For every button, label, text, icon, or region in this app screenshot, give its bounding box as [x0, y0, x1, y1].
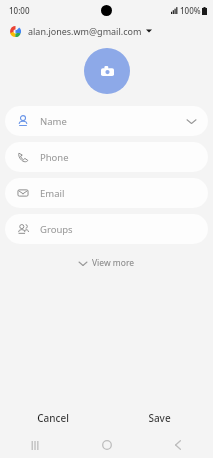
button[interactable]: View more: [71, 254, 143, 272]
staticText: 10:00: [9, 5, 30, 16]
button[interactable]: Home: [71, 432, 142, 458]
staticText: Cancel: [37, 411, 69, 425]
staticText: Groups: [40, 223, 73, 236]
button[interactable]: alan.jones.wm@gmail.com: [0, 20, 213, 42]
button[interactable]: Cancel: [0, 404, 106, 432]
staticText: Email: [40, 187, 65, 200]
button[interactable]: Back: [142, 432, 213, 458]
button[interactable]: Phone: [5, 142, 208, 172]
button[interactable]: Groups: [5, 214, 208, 244]
staticText: Name: [40, 115, 67, 128]
button[interactable]: Recent apps: [0, 432, 71, 458]
button[interactable]: Save: [106, 404, 213, 432]
button[interactable]: Email: [5, 178, 208, 208]
staticText: alan.jones.wm@gmail.com: [28, 25, 142, 37]
staticText: Phone: [40, 151, 69, 164]
staticText: 100%: [180, 5, 201, 16]
staticText: Save: [148, 411, 171, 425]
button[interactable]: Add photo: [84, 48, 130, 94]
button[interactable]: Name: [5, 106, 208, 136]
staticText: View more: [92, 257, 135, 269]
